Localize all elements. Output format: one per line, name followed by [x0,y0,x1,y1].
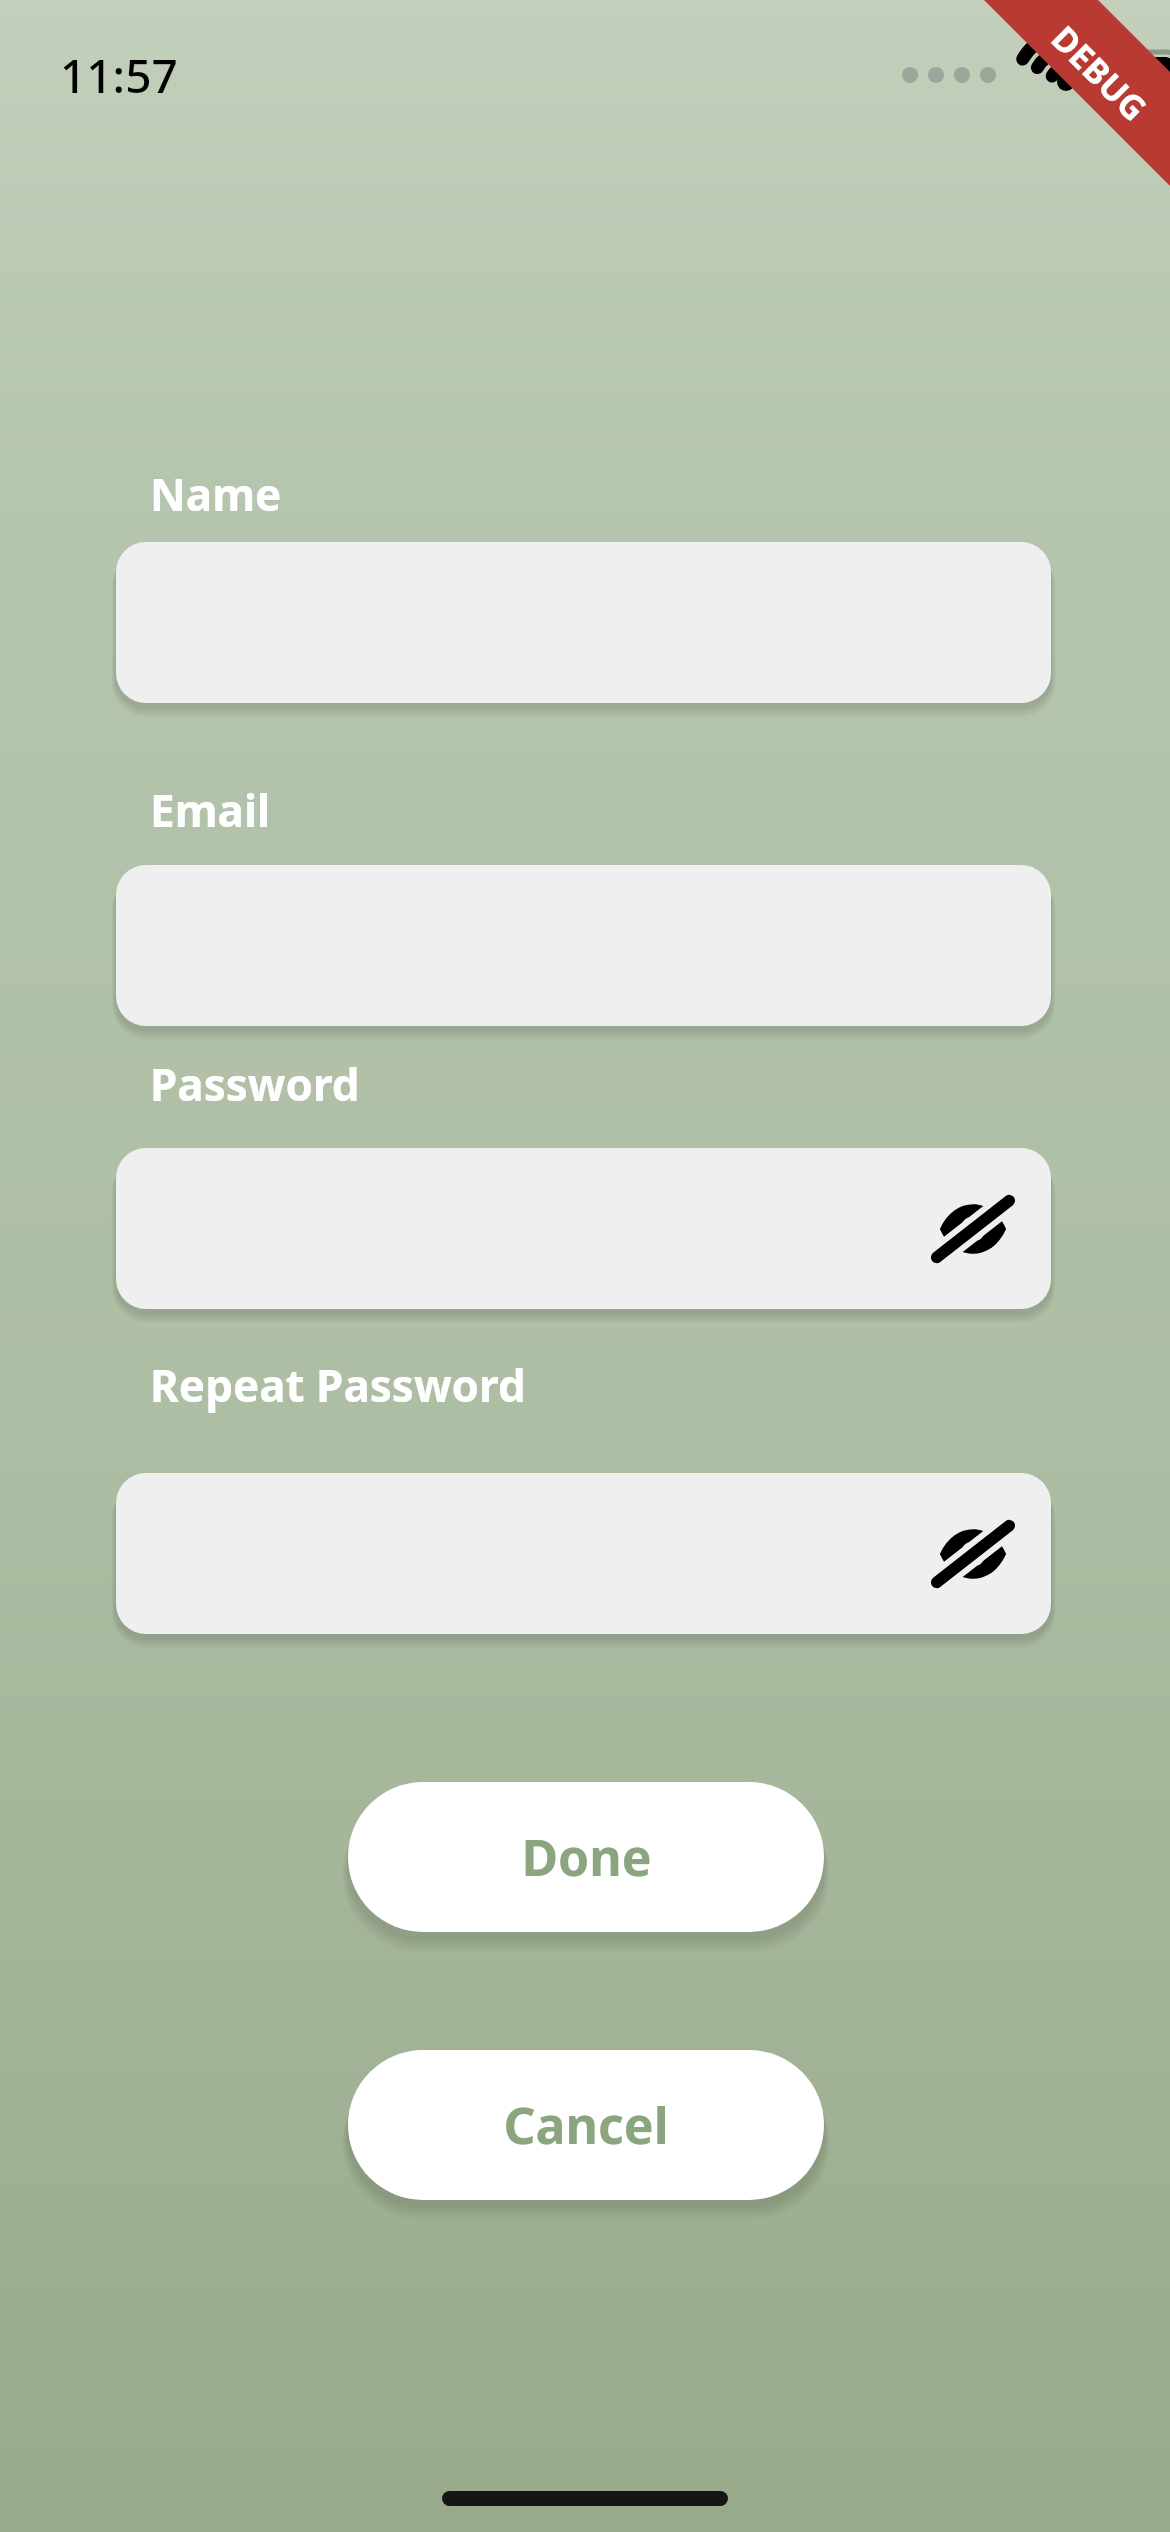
button[interactable] [116,542,1051,703]
button[interactable] [116,865,1051,1026]
staticText: Password [150,1054,360,1114]
button[interactable]: Toggle password visibility [116,1148,1051,1309]
staticText: Email [150,780,271,840]
staticText: Name [150,464,282,524]
staticText: 11:57 [60,44,178,107]
staticText: Repeat Password [150,1355,526,1415]
button[interactable]: Toggle password visibility [917,1498,1029,1610]
staticText: Cancel [503,2091,669,2159]
button[interactable]: Toggle password visibility [116,1473,1051,1634]
button[interactable]: Toggle password visibility [917,1173,1029,1285]
staticText: Done [521,1823,652,1891]
button[interactable]: Done [348,1782,824,1932]
staticText: DEBUG [1042,15,1157,131]
button[interactable]: Cancel [348,2050,824,2200]
